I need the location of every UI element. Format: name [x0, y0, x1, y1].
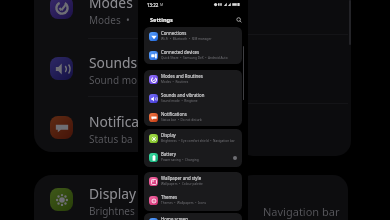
staticText: Sound mode • Ringtone: [161, 99, 198, 103]
staticText: Connected devices: [161, 49, 200, 55]
staticText: Sound mo: [89, 73, 138, 87]
staticText: Notifica: [89, 112, 140, 131]
staticText: Themes • Wallpapers • Icons: [161, 201, 206, 205]
staticText: Notifications: [161, 111, 187, 117]
button[interactable]: Wallpaper and style: [144, 172, 242, 191]
staticText: Brightnes: [89, 204, 135, 218]
staticText: Navigation bar: [263, 204, 340, 219]
staticText: Display: [161, 132, 176, 138]
staticText: Quick Share • Samsung DeX • Android Auto: [161, 56, 228, 60]
button[interactable]: Modes and Routines: [144, 70, 242, 89]
button[interactable]: Connections: [144, 27, 242, 46]
button[interactable]: Home screen: [144, 213, 242, 220]
staticText: Wi-Fi • Bluetooth • SIM manager: [161, 37, 212, 41]
staticText: Battery: [161, 151, 176, 157]
staticText: Settings: [150, 16, 173, 24]
button[interactable]: Battery: [144, 148, 242, 167]
staticText: Status ba: [89, 132, 133, 146]
staticText: Home screen: [161, 216, 188, 220]
staticText: Themes: [161, 194, 178, 200]
staticText: Modes and Routines: [161, 73, 203, 79]
staticText: 13:22: [147, 2, 159, 8]
staticText: M: [160, 2, 164, 7]
staticText: Modes: [89, 0, 133, 12]
button[interactable]: Display: [144, 129, 242, 148]
button[interactable]: Sounds and vibration: [144, 89, 242, 108]
button[interactable]: Connected devices: [144, 46, 242, 64]
staticText: Modes •: [89, 13, 130, 27]
staticText: Wallpapers • Colour palette: [161, 182, 203, 186]
staticText: Power saving • Charging: [161, 158, 199, 162]
staticText: Modes • Routines: [161, 80, 189, 84]
button[interactable]: Search: [234, 15, 243, 24]
staticText: Brightness • Eye comfort shield • Naviga…: [161, 139, 235, 143]
button[interactable]: Themes: [144, 191, 242, 210]
staticText: Status bar • Do not disturb: [161, 118, 202, 122]
staticText: Sounds and vibration: [161, 92, 205, 98]
staticText: Connections: [161, 30, 187, 36]
staticText: Sounds: [89, 53, 138, 72]
button[interactable]: Notifications: [144, 108, 242, 126]
staticText: Wallpaper and style: [161, 175, 202, 181]
staticText: Display: [89, 184, 137, 203]
